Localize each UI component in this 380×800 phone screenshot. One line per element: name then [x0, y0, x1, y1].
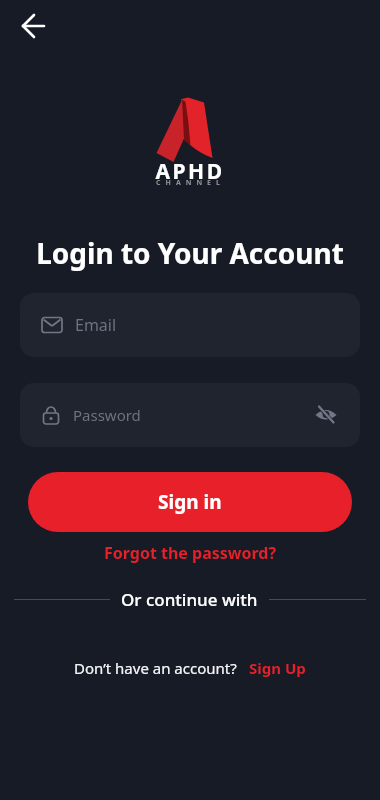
staticText: Sign Up: [249, 658, 306, 678]
staticText: Email: [75, 314, 117, 336]
staticText: Or continue with: [121, 588, 258, 611]
button[interactable]: Sign in: [28, 472, 352, 532]
button[interactable]: Forgot the password?: [104, 542, 277, 564]
button[interactable]: Password: [20, 383, 360, 447]
button[interactable]: Sign Up: [249, 658, 306, 678]
staticText: Don’t have an account?: [74, 658, 237, 678]
staticText: CHANNEL: [156, 178, 225, 188]
staticText: Password: [73, 405, 141, 425]
staticText: APHD: [155, 157, 225, 186]
staticText: Forgot the password?: [104, 542, 277, 564]
staticText: Login to Your Account: [36, 234, 344, 272]
button[interactable]: [304, 393, 348, 437]
button[interactable]: Email: [20, 293, 360, 357]
staticText: Sign in: [158, 489, 222, 515]
button[interactable]: [14, 6, 54, 46]
